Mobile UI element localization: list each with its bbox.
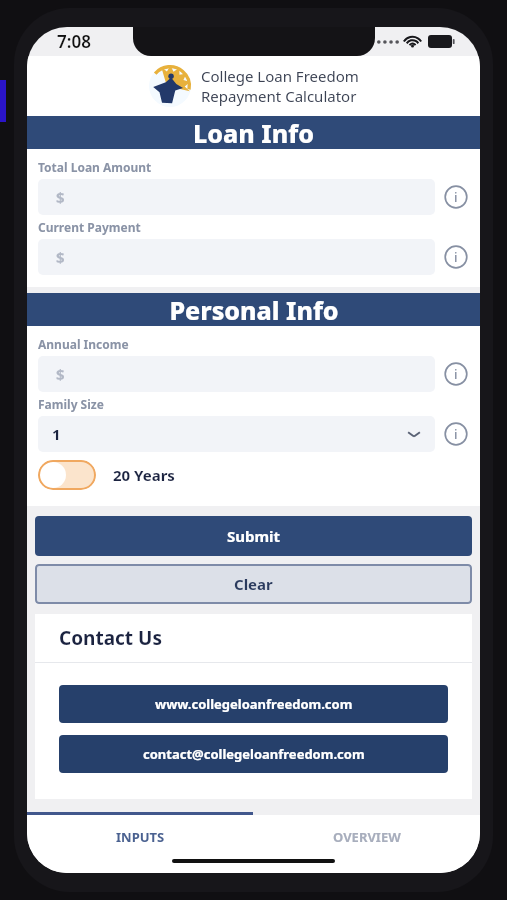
button[interactable]: $ — [38, 179, 435, 215]
staticText: i — [454, 425, 458, 443]
staticText: INPUTS — [116, 828, 165, 846]
button[interactable]: $ — [38, 356, 435, 392]
button[interactable]: contact@collegeloanfreedom.com — [59, 735, 448, 773]
staticText: Family Size — [38, 396, 104, 412]
button[interactable]: Clear — [35, 564, 472, 604]
staticText: 20 Years — [113, 465, 175, 485]
staticText: $ — [56, 187, 65, 207]
staticText: 7:08 — [57, 30, 91, 53]
staticText: www.collegeloanfreedom.com — [155, 695, 353, 713]
button[interactable]: More information — [443, 421, 469, 447]
staticText: $ — [56, 364, 65, 384]
button[interactable]: Submit — [35, 516, 472, 556]
staticText: Contact Us — [59, 625, 162, 651]
staticText: Total Loan Amount — [38, 159, 152, 175]
button[interactable]: OVERVIEW — [253, 815, 480, 859]
button[interactable]: www.collegeloanfreedom.com — [59, 685, 448, 723]
staticText: Annual Income — [38, 336, 129, 352]
button[interactable]: More information — [443, 184, 469, 210]
staticText: i — [454, 248, 458, 266]
button[interactable]: $ — [38, 239, 435, 275]
staticText: i — [454, 188, 458, 206]
button[interactable]: INPUTS — [27, 815, 253, 859]
button[interactable]: Toggle 20 Years — [38, 460, 96, 490]
staticText: Personal Info — [169, 293, 339, 326]
staticText: 1 — [52, 424, 61, 444]
button[interactable]: More information — [443, 244, 469, 270]
staticText: Clear — [234, 574, 273, 594]
staticText: i — [454, 365, 458, 383]
staticText: Loan Info — [193, 116, 314, 149]
staticText: OVERVIEW — [333, 828, 401, 846]
staticText: Submit — [227, 526, 281, 546]
button[interactable]: 1 — [38, 416, 435, 452]
staticText: College Loan Freedom — [201, 66, 359, 86]
staticText: $ — [56, 247, 65, 267]
button[interactable]: More information — [443, 361, 469, 387]
staticText: Current Payment — [38, 219, 141, 235]
staticText: Repayment Calculator — [201, 86, 357, 106]
staticText: contact@collegeloanfreedom.com — [143, 745, 365, 763]
